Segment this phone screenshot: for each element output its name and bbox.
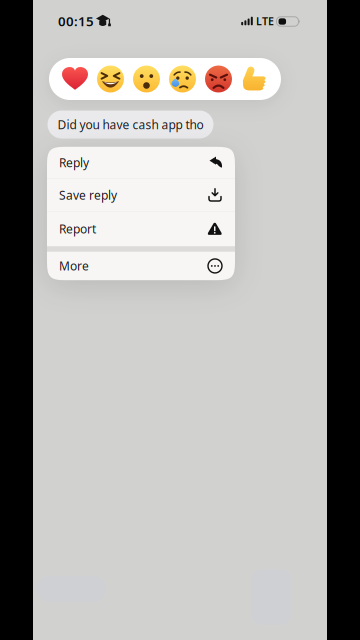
button[interactable]: Reply [47, 147, 235, 178]
staticText: More [59, 258, 89, 274]
button[interactable]: Did you have cash app tho [47, 110, 213, 138]
staticText: Report [59, 221, 96, 237]
button[interactable]: React with sadness [169, 65, 196, 92]
button[interactable]: Save reply [47, 179, 235, 211]
button[interactable]: React with love [62, 67, 88, 91]
staticText: LTE [256, 14, 274, 28]
staticText: Did you have cash app tho [57, 116, 203, 132]
button[interactable]: React with surprise [133, 65, 160, 92]
button[interactable]: React with thumbs up [241, 66, 268, 92]
button[interactable]: React with anger [205, 65, 232, 92]
button[interactable]: More [47, 252, 235, 280]
staticText: Reply [59, 155, 89, 170]
staticText: Save reply [59, 187, 117, 203]
button[interactable]: Report [47, 212, 235, 246]
button[interactable]: React with laughter [97, 65, 124, 92]
staticText: 00:15 [58, 12, 94, 30]
